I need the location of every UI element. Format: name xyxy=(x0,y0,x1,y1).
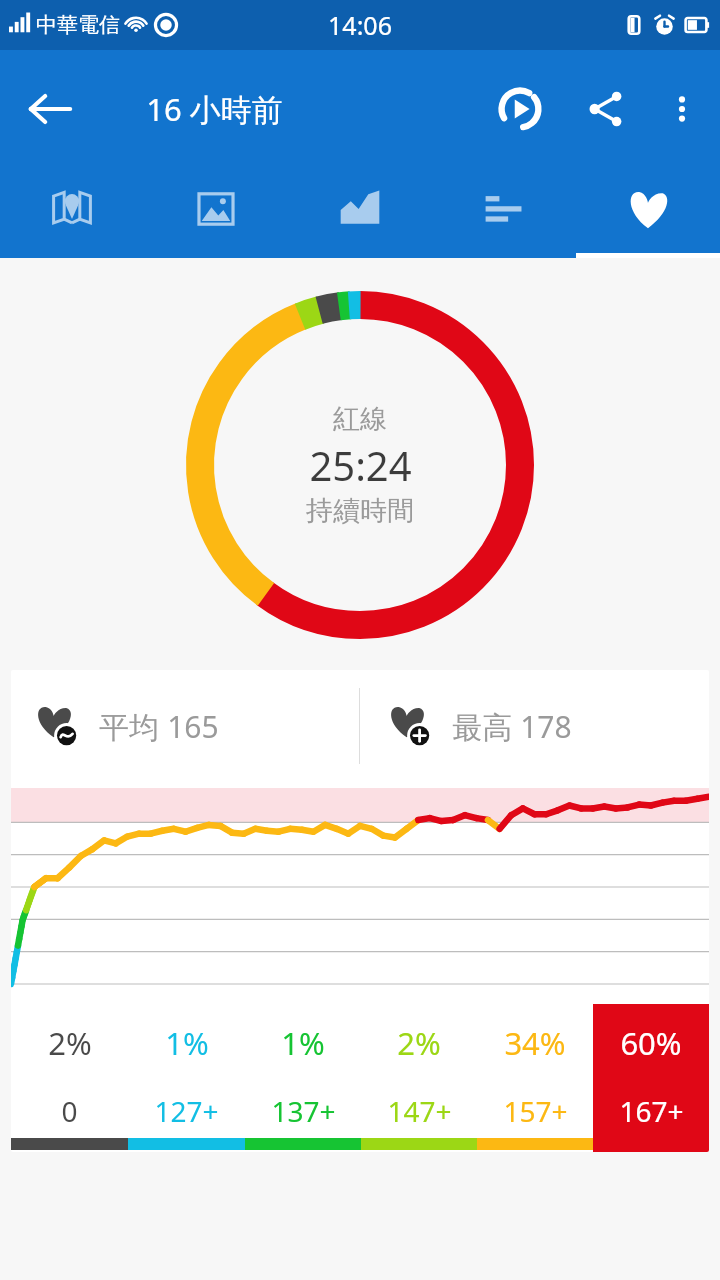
button[interactable]: Heart rate xyxy=(576,168,720,258)
button[interactable]: 60% xyxy=(593,1004,709,1152)
button[interactable]: 平均 165 xyxy=(11,670,359,782)
button[interactable]: Graphs xyxy=(288,168,432,258)
staticText: 167+ xyxy=(619,1092,684,1130)
staticText: 137+ xyxy=(271,1092,336,1130)
staticText: 2% xyxy=(48,1022,92,1064)
staticText: 16 小時前 xyxy=(146,88,283,130)
staticText: 紅線 xyxy=(333,402,387,436)
button[interactable]: 2% xyxy=(11,1004,128,1152)
button[interactable]: 2% xyxy=(361,1004,477,1152)
button[interactable]: Back xyxy=(26,85,74,133)
staticText: 60% xyxy=(620,1022,682,1064)
staticText: 14:06 xyxy=(328,8,392,42)
staticText: 平均 165 xyxy=(99,706,219,747)
button[interactable]: 34% xyxy=(477,1004,593,1152)
staticText: 25:24 xyxy=(309,438,412,492)
staticText: 157+ xyxy=(503,1092,568,1130)
button[interactable]: Photos xyxy=(144,168,288,258)
button[interactable]: 1% xyxy=(245,1004,361,1152)
button[interactable]: Share xyxy=(580,83,632,135)
staticText: 0 xyxy=(61,1092,78,1130)
staticText: 最高 178 xyxy=(452,706,572,747)
staticText: 2% xyxy=(397,1022,441,1064)
button[interactable]: 最高 178 xyxy=(360,670,709,782)
button[interactable]: Relive xyxy=(494,83,546,135)
button[interactable]: More options xyxy=(658,85,706,133)
staticText: 1% xyxy=(281,1022,325,1064)
staticText: 34% xyxy=(504,1022,566,1064)
staticText: 127+ xyxy=(154,1092,219,1130)
button[interactable]: 1% xyxy=(128,1004,245,1152)
staticText: 147+ xyxy=(387,1092,452,1130)
staticText: 持續時間 xyxy=(306,494,414,528)
button[interactable]: Map xyxy=(0,168,144,258)
button[interactable]: Splits xyxy=(432,168,576,258)
staticText: 中華電信 xyxy=(36,12,120,38)
staticText: 1% xyxy=(165,1022,209,1064)
